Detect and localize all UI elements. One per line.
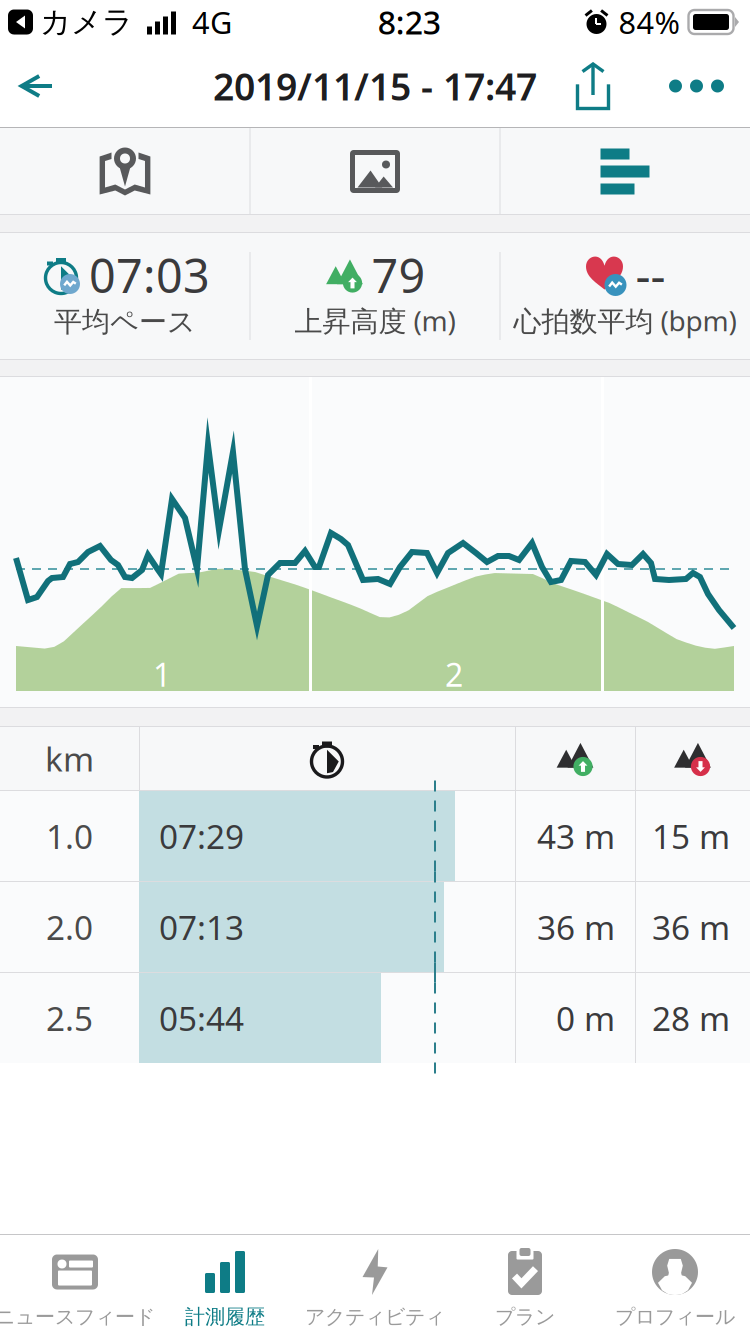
staticText: 2.5 (46, 996, 93, 1040)
button[interactable]: 1.0 (0, 791, 750, 881)
staticText: プラン (495, 1304, 555, 1329)
staticText: km (45, 736, 94, 781)
button[interactable]: アクティビティ (300, 1234, 450, 1334)
button[interactable]: ニュースフィード (0, 1234, 150, 1334)
staticText: ニュースフィード (0, 1304, 155, 1329)
staticText: 2 (445, 653, 463, 695)
staticText: 平均ペース (54, 305, 196, 339)
staticText: 2.0 (46, 905, 93, 949)
staticText: 05:44 (159, 996, 244, 1040)
button[interactable]: Photos (250, 128, 499, 215)
staticText: 36 m (652, 905, 730, 949)
button[interactable]: More (656, 44, 737, 128)
staticText: 07:29 (159, 814, 244, 858)
button[interactable]: 2.0 (0, 882, 750, 972)
staticText: 8:23 (378, 1, 441, 43)
button[interactable]: 計測履歴 (150, 1234, 300, 1334)
button[interactable]: 2.5 (0, 973, 750, 1063)
staticText: 36 m (537, 905, 615, 949)
staticText: 1 (153, 653, 171, 695)
staticText: 心拍数平均 (bpm) (513, 302, 736, 339)
staticText: -- (635, 244, 665, 306)
staticText: カメラ (40, 3, 133, 41)
staticText: 上昇高度 (m) (294, 302, 455, 339)
staticText: 79 (371, 244, 425, 306)
staticText: 計測履歴 (185, 1304, 265, 1329)
staticText: 84% (618, 2, 679, 42)
staticText: 15 m (652, 814, 730, 858)
staticText: 2019/11/15 - 17:47 (213, 61, 537, 111)
button[interactable]: プラン (450, 1234, 600, 1334)
staticText: 43 m (537, 814, 615, 858)
button[interactable]: Back (1, 44, 71, 128)
button[interactable]: プロフィール (600, 1234, 750, 1334)
staticText: 1.0 (46, 814, 93, 858)
button[interactable]: Laps (500, 128, 749, 215)
staticText: 07:03 (89, 244, 210, 306)
staticText: 4G (192, 2, 232, 42)
button[interactable]: Share (554, 44, 632, 128)
staticText: プロフィール (615, 1304, 735, 1329)
staticText: アクティビティ (305, 1304, 445, 1329)
staticText: 28 m (652, 996, 730, 1040)
staticText: 07:13 (159, 905, 244, 949)
staticText: 0 m (556, 996, 615, 1040)
button[interactable]: Map (0, 128, 249, 215)
